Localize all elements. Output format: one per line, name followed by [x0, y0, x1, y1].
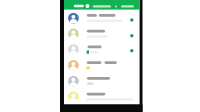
button[interactable]: Phone mockup chat list: [0, 0, 200, 112]
